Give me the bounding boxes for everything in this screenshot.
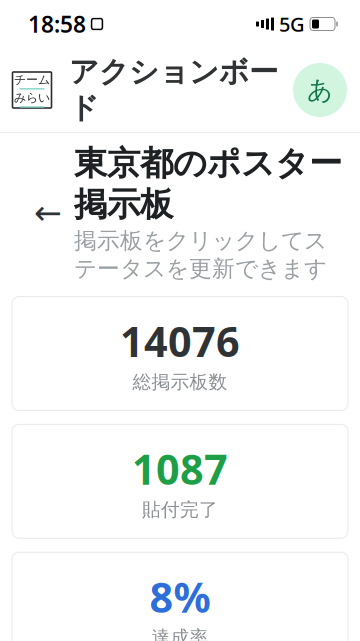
staticText: 掲示板をクリックしてステータスを更新できます	[74, 227, 327, 283]
staticText: アクションボード	[69, 54, 278, 126]
staticText: みらい	[14, 90, 50, 105]
button[interactable]: アカウント	[293, 63, 347, 117]
staticText: 14076	[120, 314, 240, 368]
staticText: チーム	[14, 72, 50, 87]
staticText: あ	[307, 74, 333, 105]
staticText: 1087	[132, 441, 228, 496]
staticText: 5G	[279, 11, 305, 37]
staticText: 貼付完了	[142, 498, 218, 521]
staticText: 18:58	[28, 9, 86, 39]
staticText: 総掲示板数	[132, 370, 227, 393]
button[interactable]: 戻る	[22, 187, 74, 239]
staticText: 達成率	[151, 626, 208, 641]
staticText: 東京都のポスター掲示板	[74, 143, 342, 225]
staticText: 8%	[149, 569, 210, 624]
staticText: ←	[34, 194, 62, 232]
